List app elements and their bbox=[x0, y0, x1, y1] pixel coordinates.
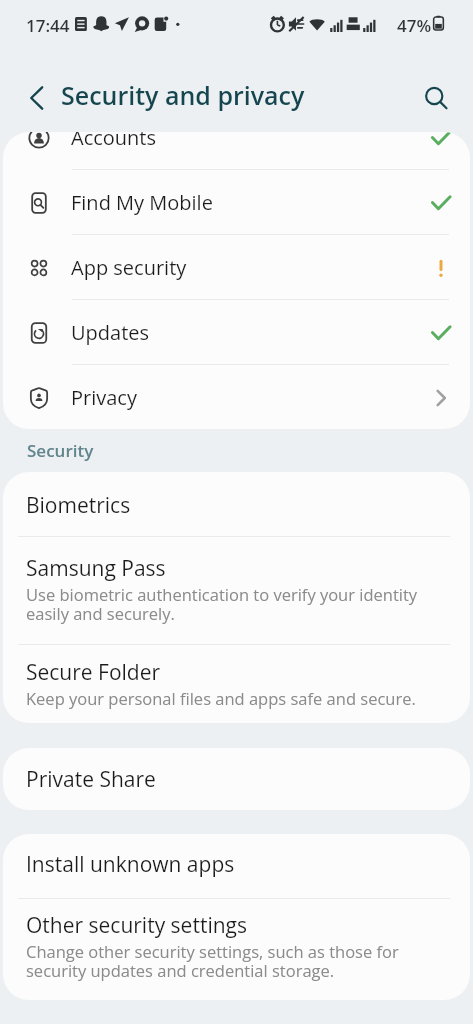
button[interactable]: Updates bbox=[3, 300, 470, 365]
button[interactable]: Private Share bbox=[3, 748, 470, 810]
staticText: Use biometric authentication to verify y… bbox=[26, 583, 418, 625]
button[interactable]: Samsung Pass bbox=[3, 537, 470, 645]
button[interactable]: App security bbox=[3, 235, 470, 300]
staticText: Privacy bbox=[71, 384, 412, 411]
staticText: Change other security settings, such as … bbox=[26, 940, 399, 982]
staticText: Biometrics bbox=[26, 491, 131, 520]
button[interactable]: Accounts bbox=[3, 132, 470, 170]
staticText: Install unknown apps bbox=[26, 850, 235, 879]
staticText: Other security settings bbox=[26, 911, 247, 940]
staticText: 47% bbox=[397, 14, 432, 37]
button[interactable]: Privacy bbox=[3, 365, 470, 429]
staticText: Security bbox=[27, 439, 94, 462]
button[interactable]: Other security settings bbox=[3, 899, 470, 1000]
staticText: Security and privacy bbox=[61, 78, 305, 112]
button[interactable]: Back bbox=[18, 78, 58, 118]
staticText: Private Share bbox=[26, 765, 156, 794]
button[interactable]: Secure Folder bbox=[3, 645, 470, 723]
staticText: App security bbox=[71, 254, 412, 281]
staticText: Samsung Pass bbox=[26, 554, 166, 583]
staticText: Keep your personal files and apps safe a… bbox=[26, 687, 416, 709]
staticText: Updates bbox=[71, 319, 412, 346]
button[interactable]: Search bbox=[414, 76, 458, 120]
staticText: Accounts bbox=[71, 132, 412, 151]
staticText: Find My Mobile bbox=[71, 189, 412, 216]
button[interactable]: Install unknown apps bbox=[3, 834, 470, 899]
button[interactable]: Biometrics bbox=[3, 472, 470, 537]
staticText: Secure Folder bbox=[26, 658, 161, 687]
button[interactable]: Find My Mobile bbox=[3, 170, 470, 235]
staticText: 17:44 bbox=[26, 14, 70, 37]
